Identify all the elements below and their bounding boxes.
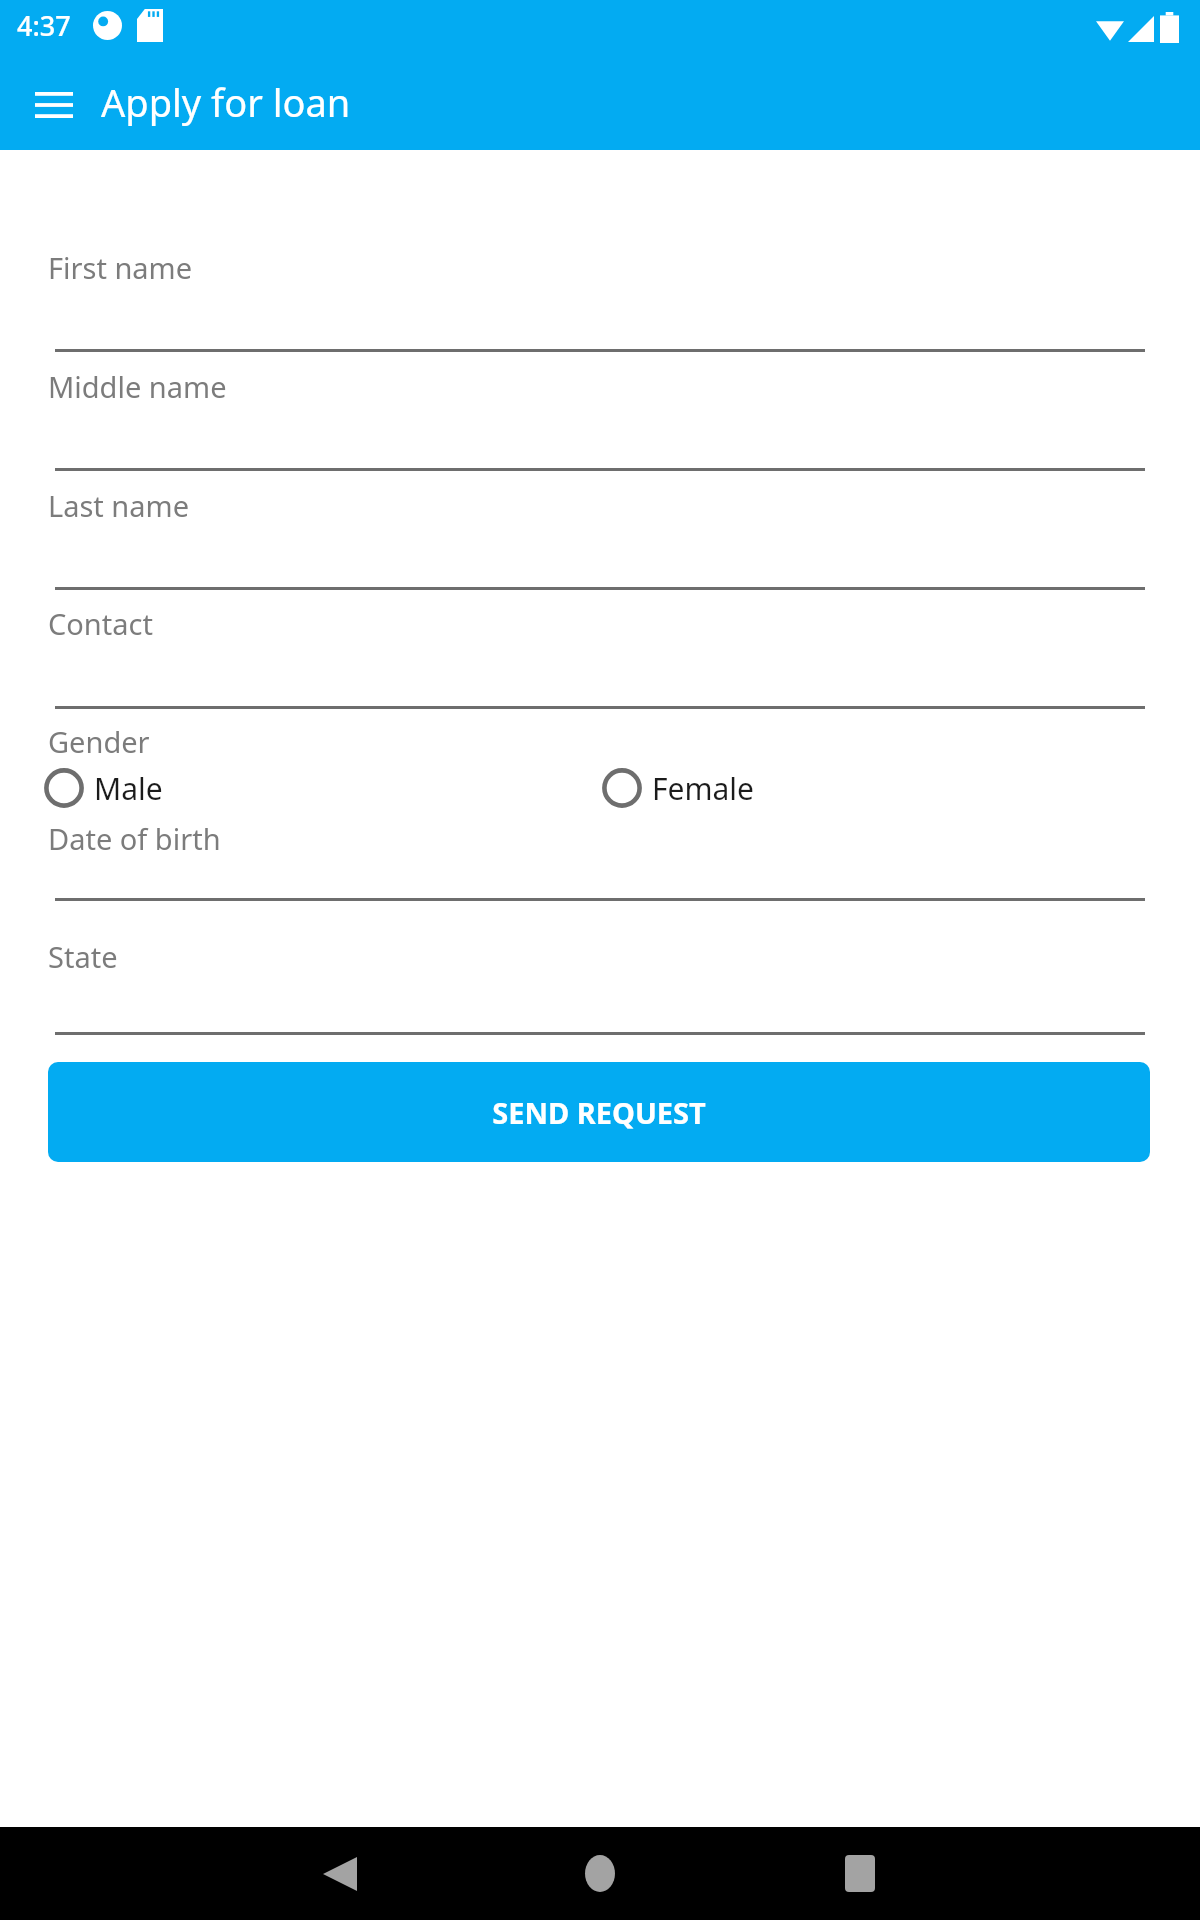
staticText: Date of birth [48, 819, 221, 858]
staticText: Middle name [48, 367, 227, 406]
staticText: SEND REQUEST [492, 1093, 706, 1132]
staticText: Last name [48, 486, 190, 525]
staticText: State [48, 937, 118, 976]
staticText: Male [94, 768, 163, 809]
staticText: Apply for loan [101, 76, 351, 128]
button[interactable]: Open navigation menu [20, 71, 88, 139]
staticText: Female [652, 768, 755, 809]
staticText: First name [48, 248, 193, 287]
staticText: Gender [48, 722, 150, 761]
staticText: Contact [48, 604, 153, 643]
button[interactable]: Male [42, 766, 163, 810]
button[interactable]: Recent apps [812, 1827, 908, 1920]
staticText: 4:37 [17, 7, 71, 44]
button[interactable]: SEND REQUEST [48, 1062, 1150, 1162]
button[interactable]: Female [600, 766, 755, 810]
button[interactable]: Home [552, 1827, 648, 1920]
button[interactable]: Back [292, 1827, 388, 1920]
